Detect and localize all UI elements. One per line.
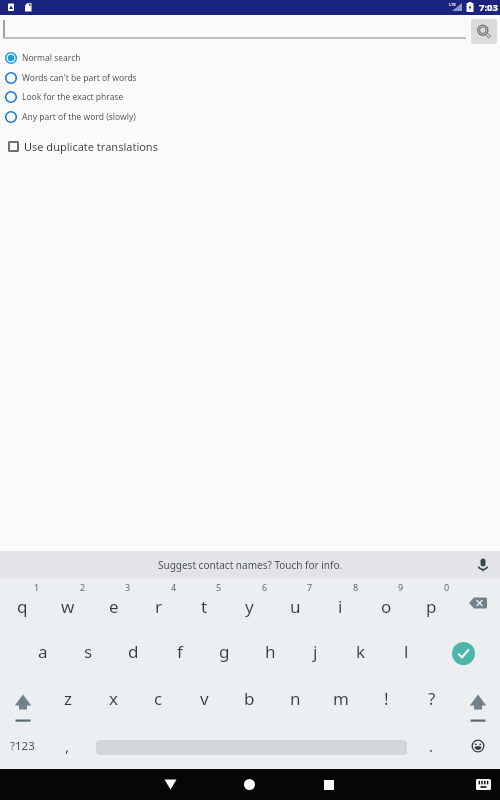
staticText: h (265, 640, 276, 663)
staticText: 8 (353, 581, 359, 591)
staticText: Normal search (22, 52, 81, 64)
staticText: 5 (216, 581, 222, 591)
button[interactable]: ?123 (0, 722, 45, 770)
staticText: 4 (171, 581, 177, 591)
staticText: 9 (398, 581, 404, 591)
button[interactable]: Any part of the word (slowly) (0, 107, 230, 127)
staticText: . (429, 736, 434, 756)
staticText: i (338, 595, 343, 618)
button[interactable] (315, 771, 343, 798)
staticText: , (65, 736, 70, 756)
button[interactable]: . (409, 722, 454, 770)
button[interactable]: r (136, 585, 181, 627)
staticText: ! (384, 687, 389, 710)
staticText: r (155, 595, 163, 618)
staticText: s (84, 640, 93, 663)
button[interactable] (452, 642, 475, 665)
staticText: 7 (307, 581, 313, 591)
staticText: o (381, 595, 392, 618)
staticText: Words can't be part of words (22, 72, 137, 84)
button[interactable] (156, 771, 184, 798)
button[interactable]: t (182, 585, 227, 627)
button[interactable]: , (45, 722, 90, 770)
staticText: v (200, 687, 209, 710)
staticText: Any part of the word (slowly) (22, 111, 136, 123)
button[interactable]: ? (409, 674, 454, 722)
button[interactable]: s (66, 627, 111, 675)
button[interactable]: u (273, 585, 318, 627)
staticText: 1 (34, 581, 40, 591)
button[interactable]: i (318, 585, 363, 627)
staticText: z (64, 687, 72, 710)
button[interactable]: Normal search (0, 48, 230, 68)
button[interactable]: ! (364, 674, 409, 722)
button[interactable]: Use duplicate translations (0, 136, 240, 156)
staticText: 2 (80, 581, 86, 591)
staticText: c (154, 687, 163, 710)
button[interactable]: b (227, 674, 272, 722)
staticText: w (61, 595, 75, 618)
button[interactable]: l (384, 627, 429, 675)
button[interactable]: Look for the exact phrase (0, 87, 230, 107)
staticText: b (244, 687, 255, 710)
staticText: Use duplicate translations (24, 139, 158, 154)
staticText: ?123 (10, 738, 35, 754)
button[interactable] (455, 722, 500, 770)
button[interactable] (469, 771, 497, 798)
staticText: u (290, 595, 301, 618)
button[interactable]: x (91, 674, 136, 722)
staticText: m (333, 687, 349, 710)
staticText: Look for the exact phrase (22, 91, 124, 103)
button[interactable]: f (157, 627, 202, 675)
button[interactable] (475, 557, 491, 573)
staticText: a (38, 640, 48, 663)
button[interactable] (455, 579, 500, 627)
button[interactable]: v (182, 674, 227, 722)
staticText: n (290, 687, 301, 710)
staticText: j (313, 640, 318, 663)
staticText: 0 (444, 581, 450, 591)
button[interactable]: d (111, 627, 156, 675)
button[interactable] (235, 771, 263, 798)
button[interactable]: j (293, 627, 338, 675)
button[interactable]: p (409, 585, 454, 627)
staticText: q (17, 595, 28, 618)
button[interactable]: w (45, 585, 90, 627)
button[interactable]: Suggest contact names? Touch for info. (0, 551, 500, 579)
button[interactable]: o (364, 585, 409, 627)
staticText: ? (428, 687, 436, 710)
button[interactable]: n (273, 674, 318, 722)
button[interactable]: y (227, 585, 272, 627)
button[interactable]: h (248, 627, 293, 675)
button[interactable]: k (338, 627, 383, 675)
button[interactable] (471, 19, 497, 44)
button[interactable]: c (136, 674, 181, 722)
staticText: g (219, 640, 230, 663)
staticText: LTE (449, 2, 456, 7)
staticText: 7:03 (479, 1, 498, 14)
button[interactable]: Words can't be part of words (0, 68, 230, 88)
button[interactable]: m (318, 674, 363, 722)
staticText: p (426, 595, 437, 618)
button[interactable] (0, 674, 45, 722)
staticText: y (245, 595, 254, 618)
button[interactable]: q (0, 585, 45, 627)
staticText: k (356, 640, 366, 663)
staticText: Suggest contact names? Touch for info. (158, 558, 343, 572)
button[interactable]: e (91, 585, 136, 627)
staticText: e (109, 595, 119, 618)
staticText: t (201, 595, 208, 618)
staticText: x (109, 687, 118, 710)
button[interactable] (455, 674, 500, 722)
button[interactable]: a (20, 627, 65, 675)
staticText: 6 (262, 581, 268, 591)
staticText: f (177, 640, 183, 663)
button[interactable]: g (202, 627, 247, 675)
staticText: d (128, 640, 139, 663)
button[interactable]: z (45, 674, 90, 722)
staticText: l (404, 640, 409, 663)
staticText: 3 (125, 581, 131, 591)
